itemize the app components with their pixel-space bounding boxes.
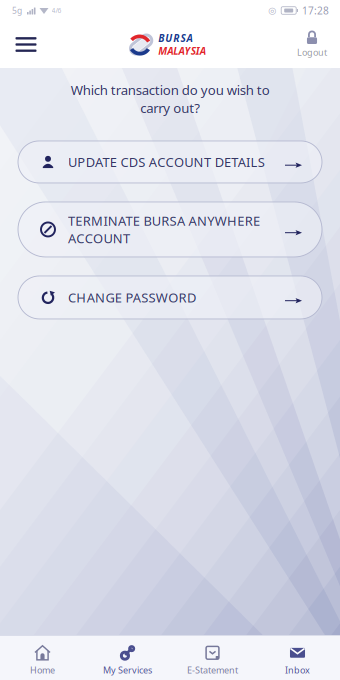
button[interactable]: Logout [288,21,336,68]
button[interactable]: Menu [4,21,48,68]
button[interactable]: Inbox [255,636,340,680]
staticText: E-Statement [187,664,238,676]
staticText: Home [30,664,55,676]
button[interactable]: CHANGE PASSWORD [18,276,322,319]
staticText: Logout [297,46,327,58]
staticText: Inbox [285,664,310,676]
button[interactable]: TERMINATE BURSA ANYWHERE ACCOUNT [18,202,322,257]
staticText: My Services [103,664,152,676]
button[interactable]: Home [0,636,85,680]
staticText: ◎ [268,5,276,16]
staticText: Which transaction do you wish to carry o… [70,81,269,117]
staticText: BURSA [158,31,193,45]
staticText: 4/6 [51,6,61,15]
staticText: CHANGE PASSWORD [68,289,196,306]
button[interactable]: UPDATE CDS ACCOUNT DETAILS [18,141,322,183]
button[interactable]: My Services [85,636,170,680]
staticText: 5g [12,5,22,16]
button[interactable]: E-Statement [170,636,255,680]
staticText: TERMINATE BURSA ANYWHERE ACCOUNT [68,212,260,247]
staticText: 17:28 [302,4,329,17]
staticText: UPDATE CDS ACCOUNT DETAILS [68,153,265,171]
staticText: MALAYSIA [158,44,206,58]
